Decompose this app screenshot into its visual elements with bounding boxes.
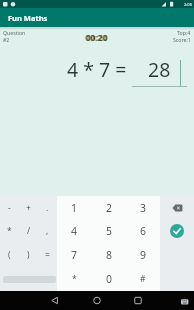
button[interactable]: [64, 291, 129, 310]
button[interactable]: *: [0, 219, 19, 243]
staticText: #2: [3, 36, 10, 43]
button[interactable]: =: [38, 243, 57, 267]
staticText: (: [8, 249, 11, 261]
button[interactable]: ,: [38, 219, 57, 243]
button[interactable]: +: [19, 196, 38, 219]
staticText: 00:20: [85, 32, 107, 44]
staticText: 28: [148, 56, 171, 83]
button[interactable]: *: [57, 267, 92, 291]
staticText: 8: [106, 248, 113, 262]
staticText: 7: [71, 248, 78, 262]
staticText: Score:1: [173, 36, 191, 43]
button[interactable]: [160, 219, 194, 243]
button[interactable]: #: [126, 267, 160, 291]
button[interactable]: 7: [57, 243, 92, 267]
staticText: 4 * 7 =: [67, 56, 132, 83]
button[interactable]: [0, 267, 57, 291]
staticText: -: [8, 202, 11, 214]
button[interactable]: -: [0, 196, 19, 219]
staticText: 2: [106, 201, 113, 215]
staticText: ,: [46, 225, 49, 237]
button[interactable]: 0: [92, 267, 126, 291]
button[interactable]: 6: [126, 219, 160, 243]
button[interactable]: 9: [126, 243, 160, 267]
button[interactable]: [129, 291, 194, 310]
staticText: *: [72, 273, 77, 285]
button[interactable]: 2: [92, 196, 126, 219]
staticText: 4: [71, 224, 78, 238]
staticText: #: [140, 273, 146, 285]
staticText: 0: [106, 272, 113, 286]
staticText: 6: [140, 224, 147, 238]
button[interactable]: /: [19, 219, 38, 243]
button[interactable]: 28: [132, 56, 187, 87]
button[interactable]: 1: [57, 196, 92, 219]
button[interactable]: [0, 291, 64, 310]
staticText: /: [27, 225, 31, 237]
staticText: +: [26, 202, 31, 214]
staticText: Question: [3, 29, 26, 36]
staticText: 3: [140, 201, 147, 215]
button[interactable]: [160, 196, 194, 219]
button[interactable]: .: [38, 196, 57, 219]
button[interactable]: 5: [92, 219, 126, 243]
staticText: 00:20: [86, 32, 108, 44]
staticText: =: [45, 249, 50, 261]
button[interactable]: 4: [57, 219, 92, 243]
staticText: Top:4: [177, 29, 191, 36]
staticText: 2:05: [184, 2, 192, 7]
button[interactable]: 3: [126, 196, 160, 219]
staticText: 1: [71, 201, 78, 215]
staticText: ): [27, 249, 30, 261]
staticText: 5: [106, 224, 113, 238]
staticText: .: [46, 202, 49, 214]
staticText: Fun Maths: [8, 13, 48, 23]
button[interactable]: ): [19, 243, 38, 267]
button[interactable]: (: [0, 243, 19, 267]
staticText: 9: [140, 248, 147, 262]
button[interactable]: 8: [92, 243, 126, 267]
staticText: *: [7, 225, 12, 237]
